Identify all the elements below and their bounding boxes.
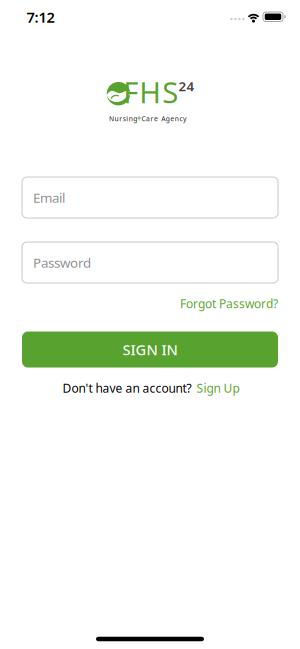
button[interactable]: SIGN IN bbox=[22, 331, 278, 367]
staticText: + bbox=[137, 113, 142, 124]
staticText: Nursing bbox=[109, 114, 137, 123]
staticText: Sign Up bbox=[196, 380, 239, 396]
staticText: SIGN IN bbox=[122, 340, 177, 359]
staticText: Email bbox=[33, 189, 65, 206]
button[interactable]: Password bbox=[22, 242, 278, 283]
button[interactable]: Email bbox=[22, 177, 278, 218]
staticText: Forgot Password? bbox=[180, 295, 278, 311]
button[interactable]: Sign Up bbox=[196, 380, 239, 396]
staticText: 24 bbox=[178, 77, 194, 95]
staticText: Password bbox=[33, 254, 91, 271]
staticText: Don't have an account? bbox=[62, 380, 191, 396]
button[interactable]: Forgot Password? bbox=[180, 295, 278, 311]
staticText: FHS bbox=[123, 72, 178, 111]
staticText: 7:12 bbox=[26, 7, 54, 27]
staticText: Care Agency bbox=[141, 114, 187, 123]
